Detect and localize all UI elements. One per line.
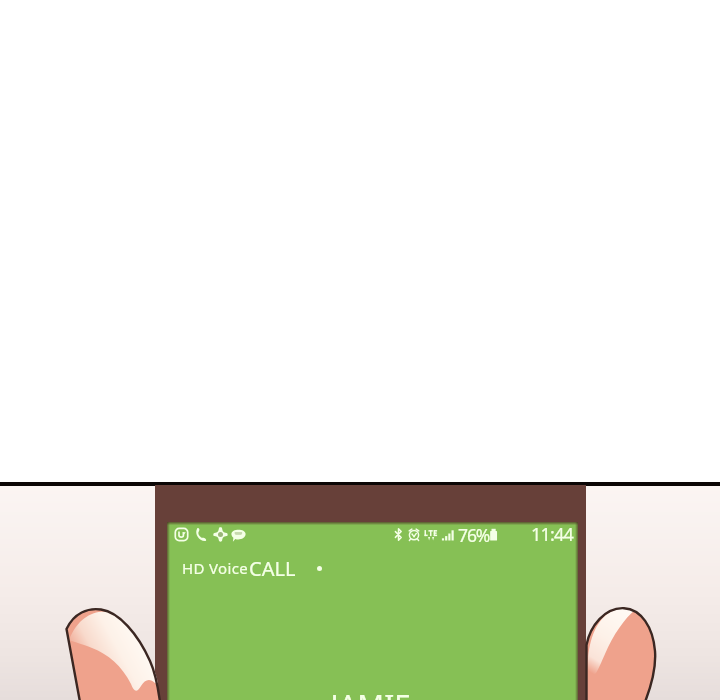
staticText: JAMIE: [165, 684, 576, 700]
staticText: 11:44: [531, 522, 574, 547]
staticText: 76%: [458, 523, 490, 547]
button[interactable]: Ongoing call screen: [167, 522, 578, 700]
staticText: CALL: [249, 555, 296, 582]
staticText: HD Voice: [182, 558, 249, 578]
button[interactable]: Status bar: [167, 522, 578, 547]
